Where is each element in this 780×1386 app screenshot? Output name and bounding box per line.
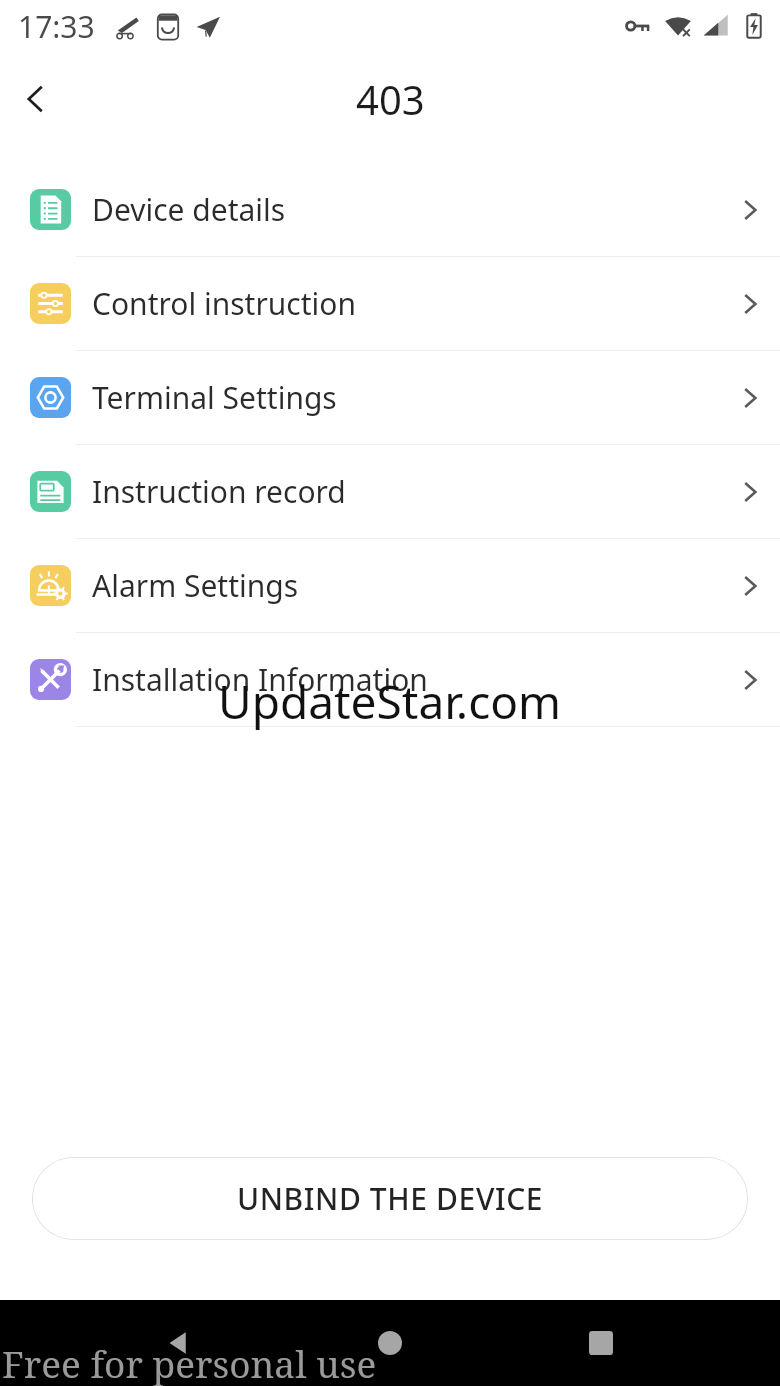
staticText: Device details (92, 189, 286, 230)
staticText: 403 (356, 72, 425, 126)
button[interactable]: Terminal Settings (0, 351, 780, 444)
button[interactable]: Back (148, 1312, 210, 1374)
staticText: Terminal Settings (92, 377, 337, 418)
button[interactable]: Instruction record (0, 445, 780, 538)
staticText: Control instruction (92, 283, 357, 324)
button[interactable]: Control instruction (0, 257, 780, 350)
staticText: Instruction record (92, 471, 346, 512)
staticText: Alarm Settings (92, 565, 299, 606)
button[interactable]: Device details (0, 163, 780, 256)
button[interactable]: Recents (570, 1312, 632, 1374)
staticText: 17:33 (18, 6, 95, 47)
staticText: UNBIND THE DEVICE (237, 1178, 544, 1219)
staticText: Installation Information (92, 659, 428, 700)
staticText: Free for personal use (2, 1338, 377, 1386)
button[interactable]: Installation Information (0, 633, 780, 726)
button[interactable]: Home (359, 1312, 421, 1374)
button[interactable]: Back (8, 71, 64, 127)
staticText: UpdateStar.com (218, 670, 562, 733)
button[interactable]: UNBIND THE DEVICE (32, 1157, 748, 1240)
button[interactable]: Alarm Settings (0, 539, 780, 632)
